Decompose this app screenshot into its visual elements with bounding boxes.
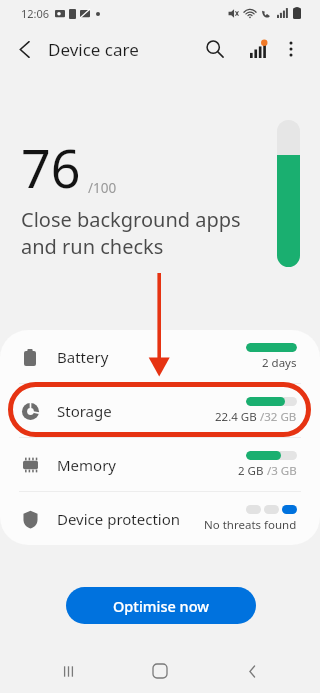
button[interactable]: Back xyxy=(228,649,276,693)
button[interactable]: Navigate up xyxy=(0,27,48,71)
button[interactable]: More options xyxy=(268,26,313,72)
button[interactable]: Memory xyxy=(0,438,320,491)
staticText: 12:06 xyxy=(21,6,50,21)
staticText: Device care xyxy=(48,38,139,61)
button[interactable]: Optimise now xyxy=(66,587,256,624)
staticText: Device protection xyxy=(57,509,181,529)
staticText: 2 days xyxy=(262,355,297,371)
staticText: 2 GB xyxy=(238,463,264,479)
staticText: Optimise now xyxy=(113,596,209,616)
staticText: Battery xyxy=(57,347,109,367)
button[interactable]: Recents xyxy=(44,649,92,693)
button[interactable]: Usage statistics xyxy=(236,26,281,72)
button[interactable]: Search xyxy=(192,26,237,72)
staticText: Storage xyxy=(57,401,112,421)
button[interactable]: Battery xyxy=(0,330,320,383)
staticText: /100 xyxy=(88,179,117,197)
button[interactable]: Home xyxy=(136,649,184,693)
button[interactable]: Device protection xyxy=(0,492,320,545)
staticText: /3 GB xyxy=(264,463,297,479)
staticText: 76 xyxy=(21,132,81,203)
staticText: /32 GB xyxy=(257,409,297,425)
staticText: 22.4 GB xyxy=(215,409,257,425)
staticText: Memory xyxy=(57,455,117,475)
staticText: Close background apps and run checks xyxy=(21,206,241,260)
staticText: No threats found xyxy=(204,517,297,533)
button[interactable]: Storage xyxy=(0,384,320,437)
